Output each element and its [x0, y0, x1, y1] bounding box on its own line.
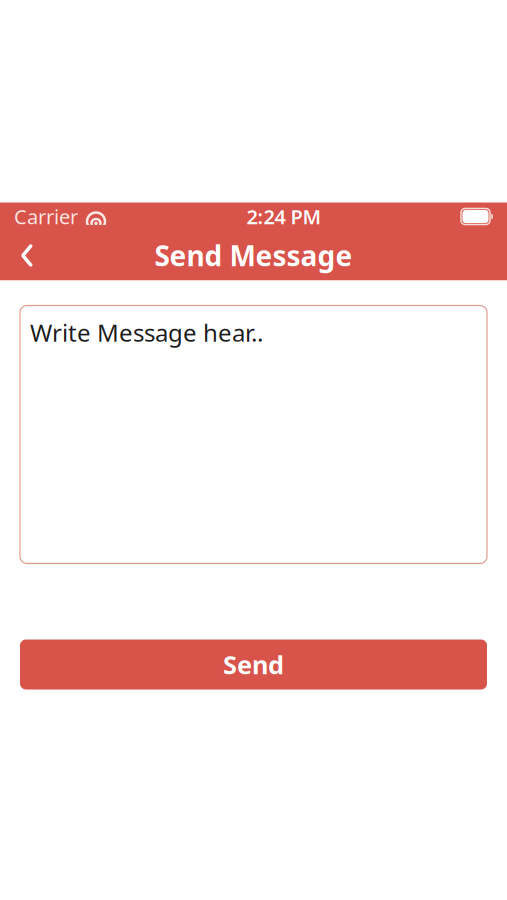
staticText: Send: [223, 648, 284, 681]
staticText: Send Message: [154, 237, 352, 274]
button[interactable]: Write Message hear..: [20, 305, 487, 563]
staticText: Write Message hear..: [30, 316, 263, 348]
staticText: 2:24 PM: [246, 203, 321, 230]
button[interactable]: Back: [0, 230, 54, 280]
staticText: Carrier: [14, 203, 78, 230]
button[interactable]: Send: [20, 639, 487, 689]
